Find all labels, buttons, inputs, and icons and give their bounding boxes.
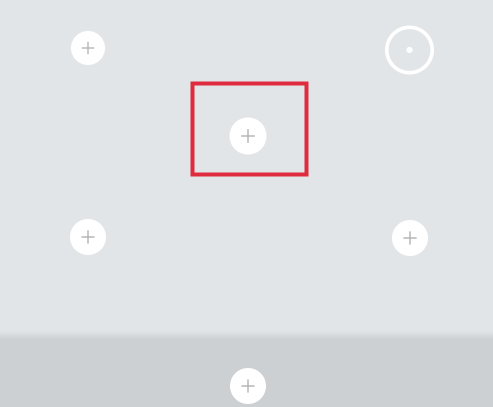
button[interactable]: Add <box>229 117 266 154</box>
button[interactable]: Record <box>385 25 434 74</box>
button[interactable]: Add <box>70 219 106 255</box>
button[interactable]: Selected item <box>192 83 306 174</box>
button[interactable]: Add <box>71 31 105 65</box>
button[interactable]: Add <box>392 220 428 256</box>
button[interactable]: Add <box>230 368 266 404</box>
